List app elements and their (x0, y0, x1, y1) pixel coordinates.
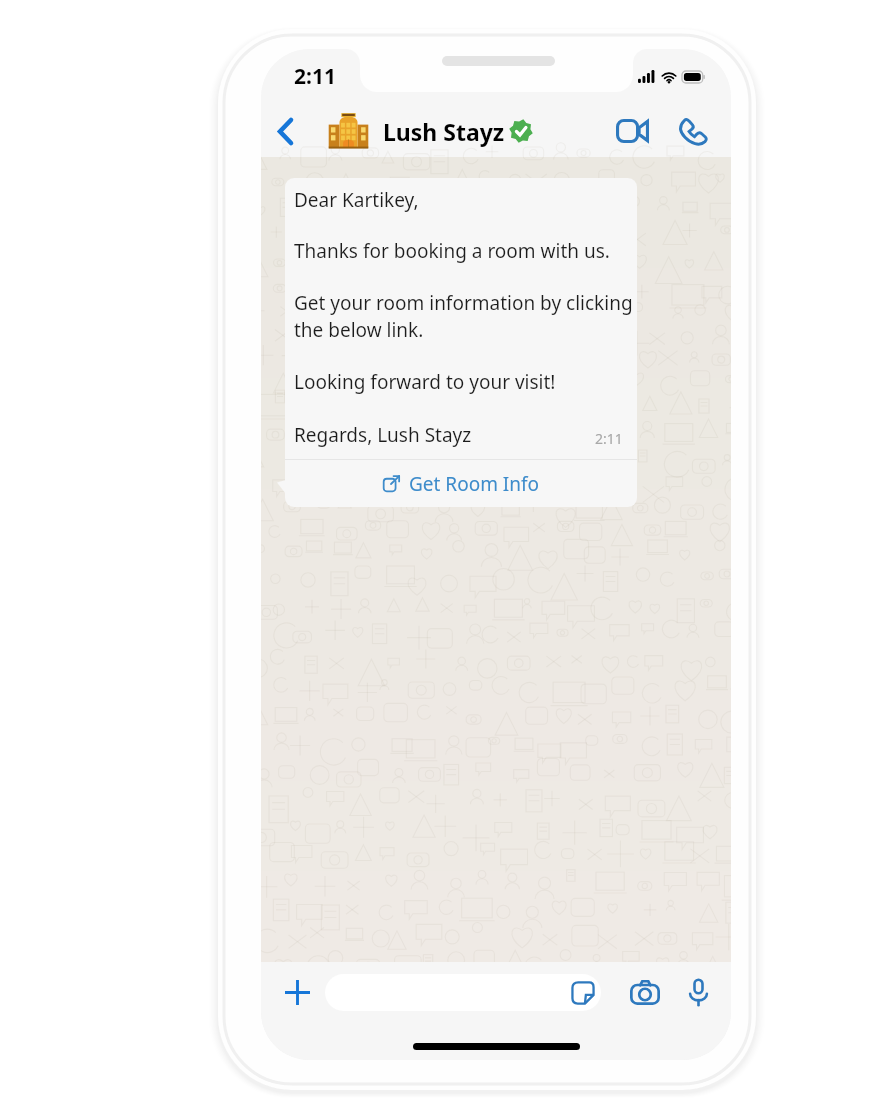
button[interactable]: Back (270, 109, 300, 153)
button[interactable]: Camera (624, 971, 666, 1013)
button[interactable]: Voice message (677, 971, 719, 1013)
staticText: Thanks for booking a room with us. (294, 238, 610, 264)
button[interactable]: Video call (609, 108, 655, 154)
staticText: Looking forward to your visit! (294, 369, 556, 395)
button[interactable]: Attach (275, 970, 319, 1014)
staticText: Get Room Info (409, 471, 540, 497)
button[interactable]: Sticker (571, 981, 595, 1005)
staticText: Regards, Lush Stayz (294, 422, 472, 448)
staticText: Dear Kartikey, (294, 187, 419, 213)
button[interactable]: Type a message (325, 974, 601, 1011)
button[interactable]: Voice call (670, 108, 714, 154)
staticText: Get your room information by clicking th… (294, 290, 636, 343)
staticText: 2:11 (294, 62, 336, 91)
staticText: 2:11 (595, 429, 623, 448)
button[interactable]: Get Room Info (285, 460, 637, 507)
staticText: Lush Stayz (383, 116, 505, 147)
